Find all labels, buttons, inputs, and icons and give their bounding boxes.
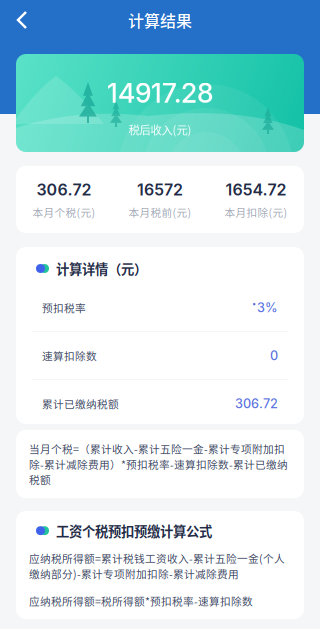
staticText: 本月扣除(元) [224,204,287,220]
staticText: 本月税前(元) [128,204,191,220]
staticText: 应纳税所得额=税所得额*预扣税率-速算扣除数 [29,593,253,609]
staticText: 0 [270,348,278,363]
staticText: 工资个税预扣预缴计算公式 [56,521,212,540]
staticText: 速算扣除数 [42,348,97,363]
staticText: 1654.72 [225,180,286,199]
staticText: 16572 [137,180,183,199]
staticText: 预扣税率 [42,300,86,315]
button[interactable]: Back [0,0,44,40]
staticText: 计算详情（元） [56,259,147,278]
staticText: 14917.28 [107,77,213,109]
staticText: 306.72 [36,180,91,199]
staticText: 计算结果 [128,8,192,32]
staticText: 累计已缴纳税额 [42,396,119,411]
staticText: 当月个税=（累计收入-累计五险一金-累计专项附加扣除-累计减除费用）*预扣税率-… [29,441,288,487]
staticText: 本月个税(元) [32,204,95,220]
staticText: 税后收入(元) [128,121,191,138]
staticText: 306.72 [235,396,278,411]
staticText: 3% [257,300,278,315]
staticText: 应纳税所得额=累计税钱工资收入-累计五险一金(个人缴纳部分)-累计专项附加扣除-… [29,550,285,581]
